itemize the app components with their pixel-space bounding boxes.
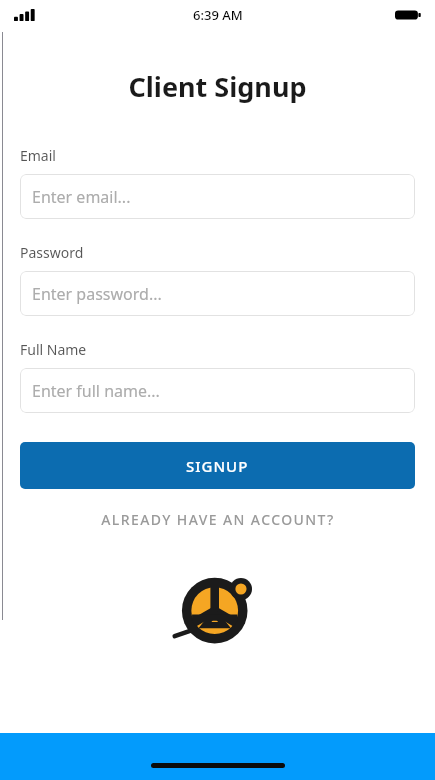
staticText: Password <box>20 243 84 262</box>
staticText: ALREADY HAVE AN ACCOUNT? <box>101 510 335 529</box>
staticText: Enter password... <box>32 283 162 305</box>
button[interactable]: Enter password... <box>20 271 415 316</box>
staticText: Client Signup <box>0 68 435 105</box>
staticText: Email <box>20 146 56 165</box>
staticText: Full Name <box>20 340 87 359</box>
staticText: Enter email... <box>32 186 131 208</box>
button[interactable]: SIGNUP <box>20 442 415 489</box>
staticText: 6:39 AM <box>193 6 243 24</box>
other: App logo <box>177 568 259 650</box>
staticText: SIGNUP <box>186 456 249 476</box>
staticText: Enter full name... <box>32 380 160 402</box>
button[interactable]: Enter email... <box>20 174 415 219</box>
button[interactable]: Enter full name... <box>20 368 415 413</box>
button[interactable]: ALREADY HAVE AN ACCOUNT? <box>0 510 435 529</box>
